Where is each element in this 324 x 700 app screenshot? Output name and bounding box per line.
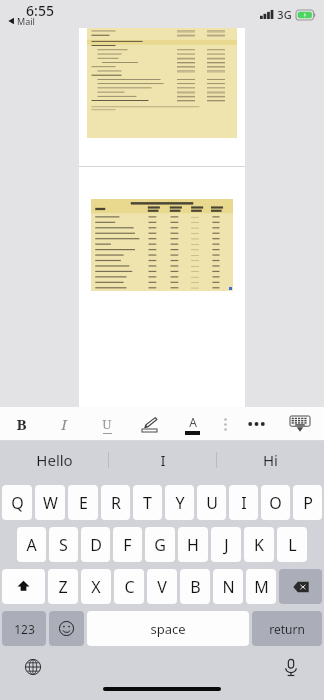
staticText: A — [26, 534, 37, 556]
button[interactable]: D — [81, 527, 110, 562]
staticText: R — [111, 492, 121, 514]
button[interactable]: Q — [2, 485, 32, 520]
staticText: I — [160, 450, 166, 470]
staticText: Hi — [263, 450, 278, 470]
staticText: X — [91, 576, 101, 598]
button[interactable]: T — [133, 485, 162, 520]
staticText: T — [143, 492, 152, 514]
button[interactable]: V — [147, 569, 177, 604]
button[interactable]: P — [293, 485, 322, 520]
staticText: G — [154, 534, 166, 556]
button[interactable]: F — [113, 527, 142, 562]
staticText: P — [303, 492, 313, 514]
staticText: N — [222, 576, 235, 598]
button[interactable]: U — [197, 485, 226, 520]
button[interactable]: N — [213, 569, 243, 604]
button[interactable]: Return — [252, 611, 322, 646]
button[interactable]: Bold — [0, 407, 42, 441]
button[interactable]: Underline — [85, 407, 128, 441]
button[interactable]: Dictate — [280, 656, 302, 678]
button[interactable]: H — [178, 527, 208, 562]
button[interactable]: K — [244, 527, 274, 562]
staticText: 3G — [277, 7, 292, 22]
button[interactable]: Emoji — [49, 611, 84, 646]
button[interactable]: Hi — [217, 441, 324, 479]
staticText: A — [189, 414, 197, 430]
staticText: M — [254, 576, 269, 598]
button[interactable]: R — [101, 485, 130, 520]
button[interactable]: Mail — [8, 15, 35, 27]
button[interactable]: S — [49, 527, 78, 562]
staticText: H — [187, 534, 199, 556]
staticText: B — [190, 576, 201, 598]
button[interactable]: Highlight — [128, 407, 171, 441]
button[interactable]: Hide keyboard — [276, 407, 324, 441]
staticText: U — [102, 415, 112, 433]
staticText: Hello — [36, 450, 73, 470]
button[interactable]: O — [261, 485, 290, 520]
staticText: L — [288, 534, 297, 556]
button[interactable]: More options — [214, 407, 236, 441]
staticText: E — [79, 492, 88, 514]
button[interactable]: Change keyboard language — [22, 656, 44, 678]
staticText: I — [241, 492, 247, 514]
staticText: 123 — [14, 621, 35, 637]
button[interactable]: I — [109, 441, 216, 479]
button[interactable]: J — [211, 527, 241, 562]
staticText: D — [90, 534, 102, 556]
staticText: U — [206, 492, 218, 514]
button[interactable]: Backspace — [279, 569, 322, 604]
staticText: S — [59, 534, 68, 556]
button[interactable]: Space — [87, 611, 249, 646]
button[interactable]: Text color — [171, 407, 214, 441]
staticText: B — [16, 414, 27, 434]
button[interactable]: C — [114, 569, 144, 604]
staticText: V — [157, 576, 167, 598]
button[interactable]: More — [236, 407, 276, 441]
staticText: Z — [58, 576, 68, 598]
staticText: W — [43, 492, 58, 514]
staticText: J — [224, 534, 229, 556]
button[interactable]: Italic — [42, 407, 85, 441]
staticText: Q — [11, 492, 24, 514]
staticText: C — [124, 576, 135, 598]
staticText: Mail — [17, 15, 35, 27]
button[interactable]: Hello — [0, 441, 108, 479]
staticText: O — [269, 492, 282, 514]
button[interactable]: G — [145, 527, 175, 562]
button[interactable]: B — [180, 569, 210, 604]
button[interactable]: Z — [48, 569, 78, 604]
staticText: K — [254, 534, 264, 556]
button[interactable]: Numbers — [2, 611, 46, 646]
button[interactable]: Shift — [2, 569, 45, 604]
button[interactable]: W — [35, 485, 65, 520]
button[interactable]: E — [68, 485, 98, 520]
staticText: I — [61, 414, 67, 434]
staticText: 6:55 — [26, 1, 54, 20]
button[interactable]: A — [17, 527, 46, 562]
staticText: space — [150, 620, 186, 638]
button[interactable]: M — [246, 569, 276, 604]
staticText: Y — [175, 492, 185, 514]
button[interactable]: Y — [165, 485, 194, 520]
staticText: return — [269, 621, 305, 637]
staticText: F — [123, 534, 132, 556]
button[interactable]: X — [81, 569, 111, 604]
button[interactable]: L — [277, 527, 307, 562]
button[interactable]: I — [229, 485, 258, 520]
